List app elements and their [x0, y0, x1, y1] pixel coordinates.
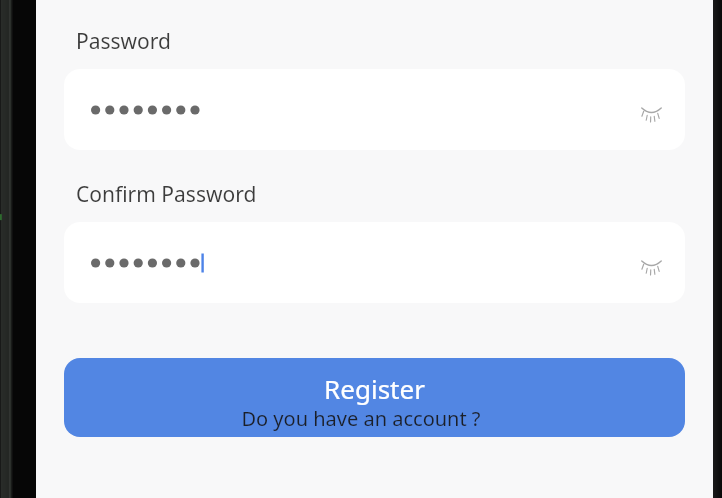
staticText: Confirm Password	[76, 180, 257, 209]
staticText: Password	[76, 27, 171, 56]
button[interactable]: Register	[64, 358, 685, 437]
button[interactable]: Do you have an account ?	[241, 405, 481, 432]
button[interactable]: Show password	[634, 93, 668, 127]
button[interactable]: Show password	[64, 69, 685, 150]
staticText: Do you have an account ?	[241, 405, 481, 432]
button[interactable]: Show confirm password	[634, 246, 668, 280]
button[interactable]: Show confirm password	[64, 222, 685, 303]
staticText: Register	[324, 371, 425, 406]
